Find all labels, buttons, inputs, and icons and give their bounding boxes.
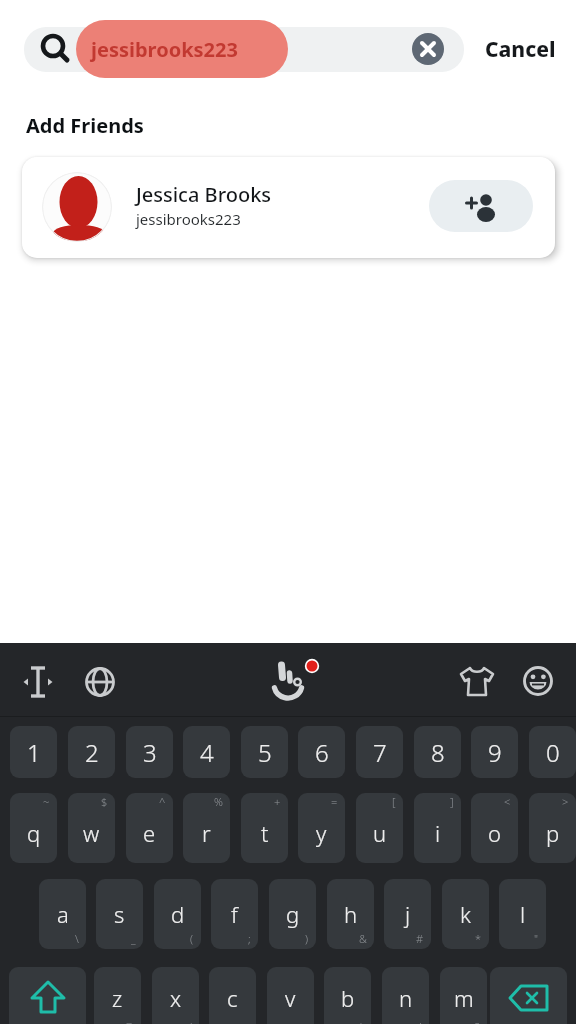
staticText: % xyxy=(214,794,223,809)
button[interactable]: d xyxy=(154,879,201,949)
staticText: s xyxy=(114,899,125,929)
button[interactable]: i xyxy=(414,793,461,863)
staticText: 5 xyxy=(258,736,272,769)
button[interactable] xyxy=(457,662,497,702)
staticText: 0 xyxy=(546,736,560,769)
staticText: @ xyxy=(124,1019,134,1024)
button[interactable]: p xyxy=(529,793,576,863)
staticText: # xyxy=(416,931,424,946)
button[interactable] xyxy=(9,967,86,1024)
staticText: | xyxy=(358,1019,364,1024)
staticText: 1 xyxy=(27,736,41,769)
button[interactable]: f xyxy=(211,879,258,949)
button[interactable]: o xyxy=(471,793,518,863)
staticText: z xyxy=(112,983,123,1013)
staticText: Jessica Brooks xyxy=(136,181,272,208)
staticText: y xyxy=(316,818,327,848)
staticText: o xyxy=(488,818,501,848)
button[interactable]: u xyxy=(356,793,403,863)
button[interactable]: q xyxy=(10,793,57,863)
button[interactable]: y xyxy=(298,793,345,863)
button[interactable]: 2 xyxy=(68,726,115,778)
staticText: r xyxy=(202,818,211,848)
button[interactable]: 0 xyxy=(529,726,576,778)
staticText: Cancel xyxy=(485,35,556,64)
staticText: t xyxy=(261,818,269,848)
staticText: _ xyxy=(131,931,136,946)
button[interactable]: 8 xyxy=(414,726,461,778)
button[interactable]: s xyxy=(96,879,143,949)
staticText: w xyxy=(83,818,100,848)
staticText: u xyxy=(373,818,387,848)
staticText: $ xyxy=(101,794,108,809)
staticText: ~ xyxy=(43,794,50,809)
staticText: f xyxy=(231,899,238,929)
button[interactable]: 3 xyxy=(126,726,173,778)
button[interactable]: g xyxy=(269,879,316,949)
button[interactable] xyxy=(80,662,120,702)
button[interactable]: w xyxy=(68,793,115,863)
staticText: g xyxy=(286,899,300,929)
button[interactable]: Jessica Brooks xyxy=(22,157,555,258)
staticText: * xyxy=(475,931,482,946)
button[interactable]: m xyxy=(440,967,487,1024)
button[interactable]: 4 xyxy=(183,726,230,778)
button[interactable]: b xyxy=(324,967,371,1024)
staticText: " xyxy=(534,931,539,946)
staticText: v xyxy=(285,983,296,1013)
staticText: b xyxy=(341,983,355,1013)
button[interactable]: x xyxy=(152,967,199,1024)
staticText: [ xyxy=(392,794,396,809)
button[interactable]: 1 xyxy=(10,726,57,778)
staticText: > xyxy=(562,794,569,809)
button[interactable]: 9 xyxy=(471,726,518,778)
staticText: 4 xyxy=(200,736,214,769)
button[interactable]: k xyxy=(442,879,489,949)
button[interactable]: v xyxy=(267,967,314,1024)
button[interactable] xyxy=(18,662,58,702)
button[interactable] xyxy=(490,967,567,1024)
staticText: h xyxy=(344,899,358,929)
button[interactable] xyxy=(518,662,558,702)
button[interactable]: 7 xyxy=(356,726,403,778)
staticText: a xyxy=(57,899,69,929)
staticText: & xyxy=(359,931,367,946)
button[interactable]: 6 xyxy=(298,726,345,778)
button[interactable] xyxy=(429,180,533,232)
staticText: ) xyxy=(305,931,309,946)
staticText: ] xyxy=(450,794,454,809)
staticText: ( xyxy=(190,931,194,946)
button[interactable]: Cancel xyxy=(480,27,560,72)
button[interactable]: a xyxy=(39,879,86,949)
staticText: ! xyxy=(419,1019,422,1024)
button[interactable]: z xyxy=(94,967,141,1024)
button[interactable]: t xyxy=(241,793,288,863)
staticText: l xyxy=(520,899,526,929)
staticText: jessibrooks223 xyxy=(136,209,241,229)
staticText: 2 xyxy=(85,736,99,769)
button[interactable]: e xyxy=(126,793,173,863)
button[interactable]: jessibrooks223 xyxy=(76,20,288,78)
staticText: \ xyxy=(75,931,79,946)
button[interactable]: h xyxy=(327,879,374,949)
staticText: p xyxy=(546,818,560,848)
button[interactable]: j xyxy=(384,879,431,949)
staticText: jessibrooks223 xyxy=(91,36,238,63)
button[interactable]: r xyxy=(183,793,230,863)
staticText: k xyxy=(460,899,471,929)
button[interactable]: 5 xyxy=(241,726,288,778)
staticText: 8 xyxy=(431,736,445,769)
button[interactable] xyxy=(412,33,444,65)
staticText: < xyxy=(504,794,511,809)
button[interactable]: n xyxy=(382,967,429,1024)
button[interactable]: l xyxy=(499,879,546,949)
button[interactable] xyxy=(255,651,325,711)
staticText: 9 xyxy=(488,736,502,769)
staticText: i xyxy=(435,818,441,848)
button[interactable]: c xyxy=(209,967,256,1024)
staticText: 7 xyxy=(373,736,387,769)
staticText: ^ xyxy=(159,794,166,809)
staticText: 6 xyxy=(315,736,329,769)
